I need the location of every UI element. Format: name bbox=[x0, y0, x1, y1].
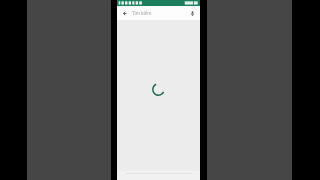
button[interactable]: Back bbox=[120, 8, 130, 18]
button[interactable]: Back bbox=[117, 6, 200, 20]
button[interactable]: Voice search bbox=[187, 8, 197, 18]
staticText: Tìm kiếm bbox=[132, 10, 187, 16]
